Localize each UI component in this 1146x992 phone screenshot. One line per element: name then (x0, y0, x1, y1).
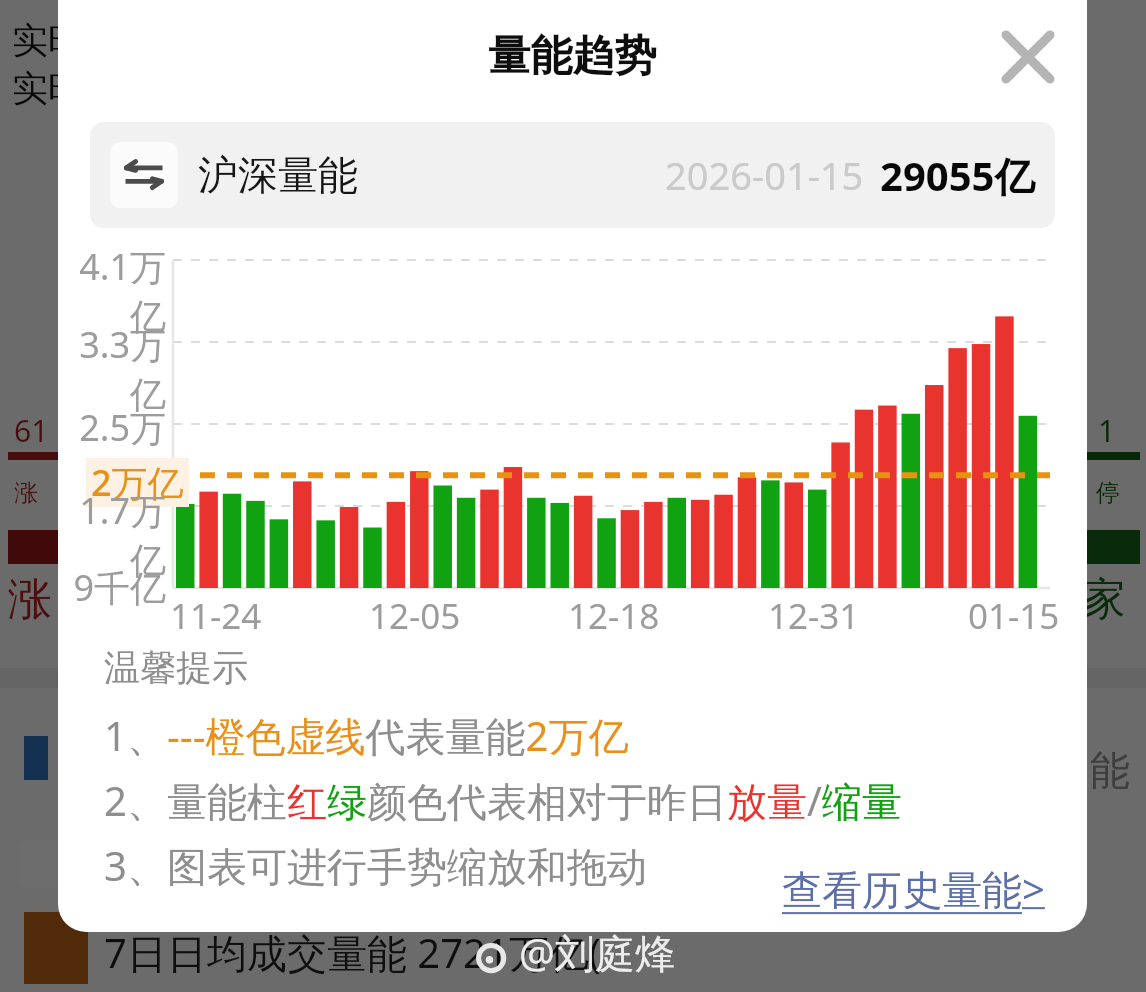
staticText: 1 (1098, 410, 1116, 451)
staticText: 1、---橙色虚线代表量能2万亿 (104, 708, 629, 763)
staticText: 29055亿 (880, 148, 1035, 203)
staticText: @刘庭烽 (519, 925, 675, 980)
staticText: 2026-01-15 (665, 149, 864, 201)
staticText: 能 (1090, 745, 1130, 795)
staticText: 7日日均成交量能 2721万亿( (104, 925, 601, 980)
staticText: 3.3万亿 (58, 320, 166, 418)
staticText: 12-18 (568, 592, 660, 640)
staticText: 12-31 (768, 592, 860, 640)
staticText: 1.7万亿 (58, 486, 166, 584)
staticText: 涨 (14, 478, 38, 508)
staticText: 沪深量能 (198, 150, 358, 200)
staticText: 量能趋势 (58, 30, 1087, 83)
staticText: 61 (14, 410, 49, 451)
button[interactable]: 查看历史量能> (776, 855, 1051, 922)
staticText: 实时盘口解读 实时盘口解读 (12, 18, 228, 112)
staticText: 3、图表可进行手势缩放和拖动 (104, 838, 647, 893)
button[interactable]: Switch index (90, 122, 1055, 228)
staticText: 2、量能柱红绿颜色代表相对于昨日放量/缩量 (104, 773, 902, 828)
staticText: 01-15 (968, 592, 1060, 640)
staticText: 2.5万亿 (58, 403, 166, 501)
staticText: 停 (1096, 478, 1120, 508)
staticText: 9千亿 (58, 563, 166, 612)
staticText: 2万亿 (91, 458, 184, 507)
staticText: 11-24 (170, 592, 262, 640)
staticText: 涨 (8, 572, 52, 627)
button[interactable]: Close (983, 12, 1073, 102)
staticText: 温馨提示 (104, 645, 248, 690)
staticText: 家 (1082, 572, 1126, 627)
other: Switch index (110, 142, 178, 208)
staticText: 4.1万亿 (58, 242, 166, 340)
staticText: 查看历史量能> (782, 861, 1045, 916)
staticText: 12-05 (369, 592, 461, 640)
